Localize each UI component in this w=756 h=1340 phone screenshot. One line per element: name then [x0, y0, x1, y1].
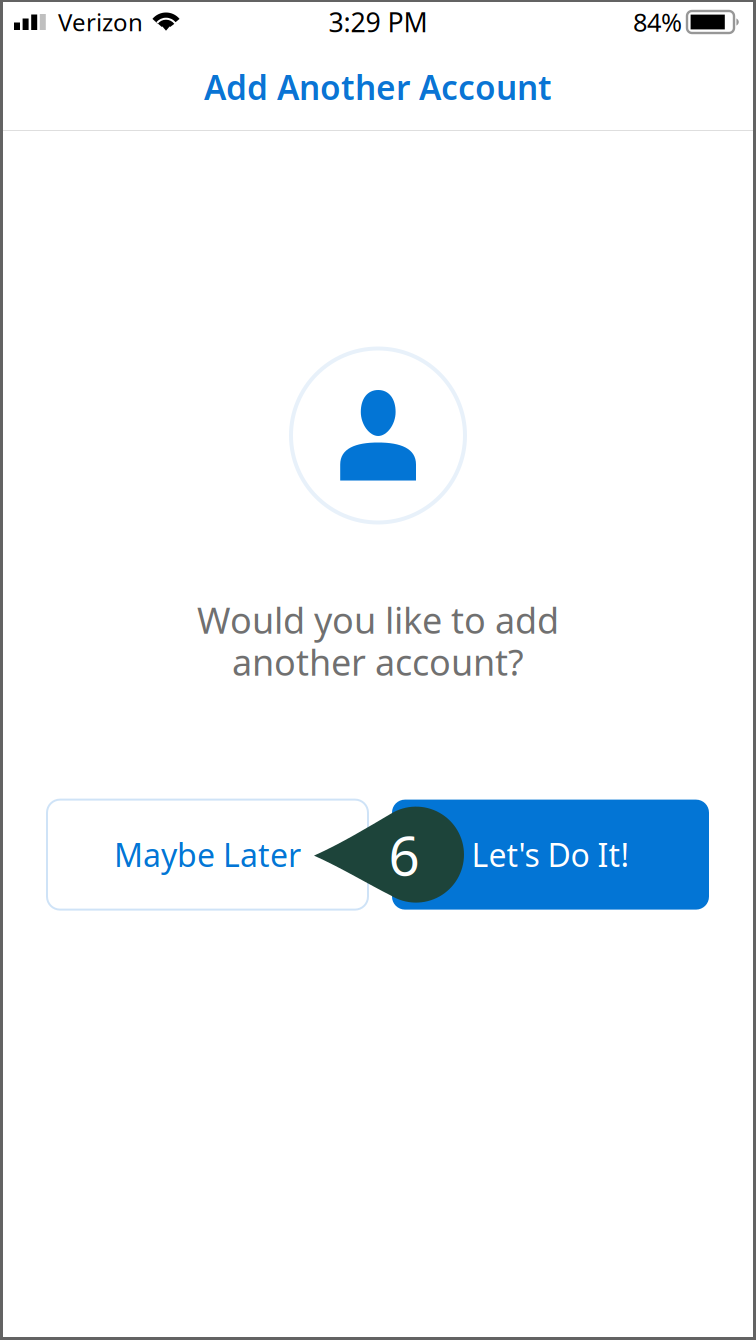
- staticText: Verizon: [58, 6, 143, 38]
- staticText: 6: [388, 818, 419, 891]
- button[interactable]: Maybe Later: [47, 800, 368, 910]
- staticText: Let's Do It!: [471, 833, 629, 876]
- staticText: 84%: [633, 5, 682, 39]
- staticText: Add Another Account: [204, 65, 552, 109]
- staticText: Maybe Later: [114, 833, 301, 876]
- staticText: another account?: [232, 638, 524, 686]
- button[interactable]: Let's Do It!: [392, 800, 709, 910]
- staticText: 3:29 PM: [328, 4, 427, 40]
- staticText: Would you like to add: [197, 596, 559, 644]
